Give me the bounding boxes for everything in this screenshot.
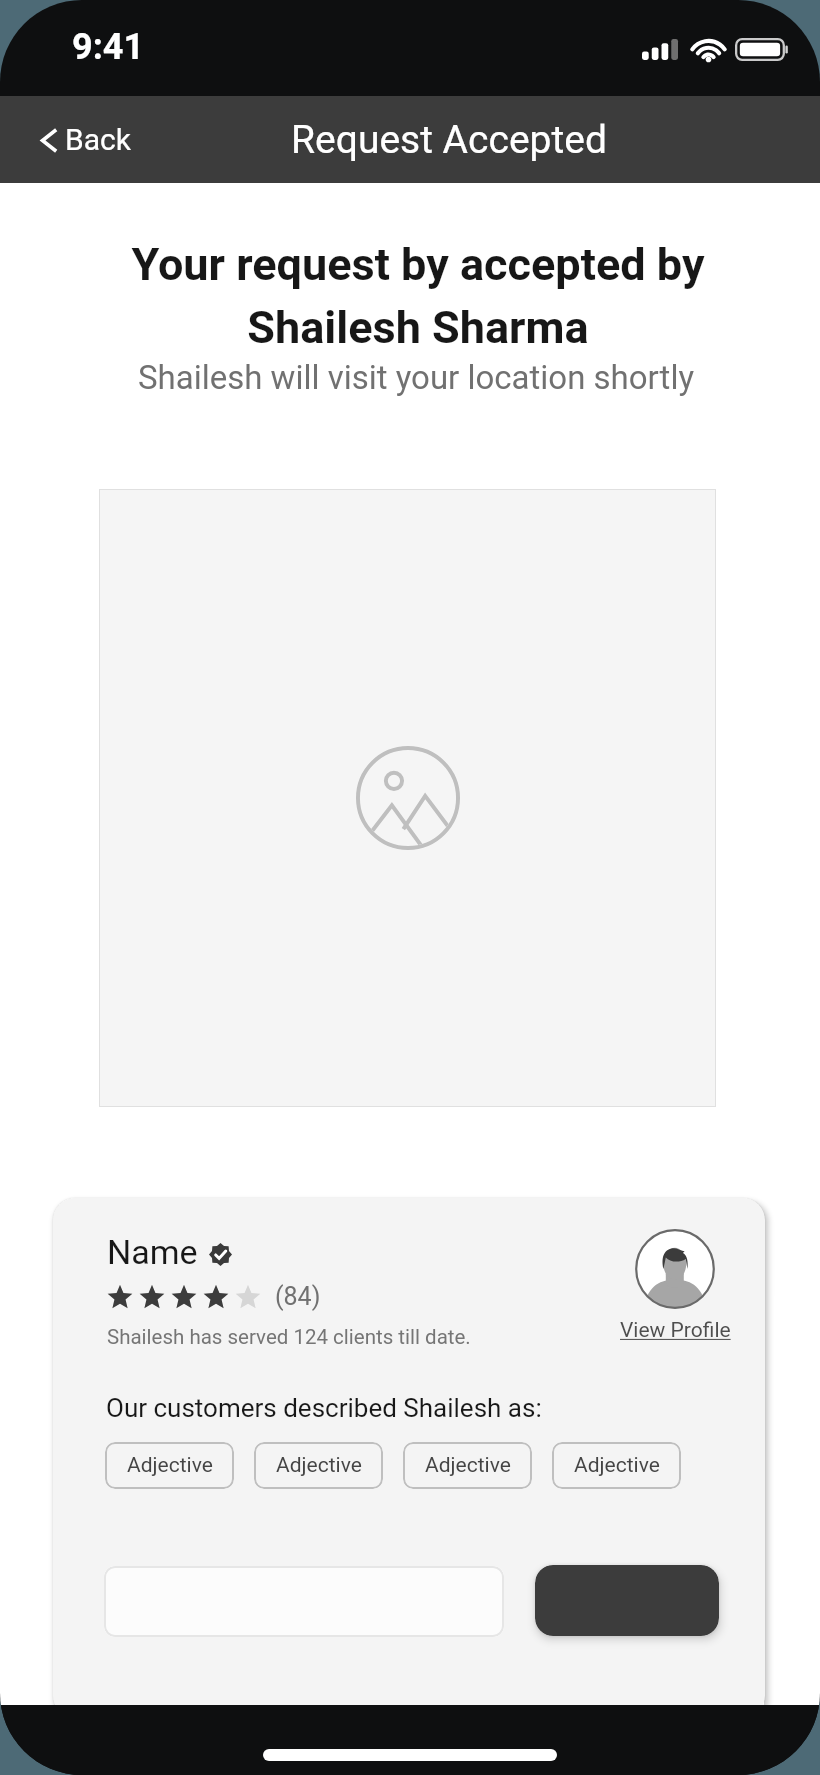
staticText: Your request by accepted by Shailesh Sha… [62,238,774,354]
button[interactable]: Adjective [403,1442,532,1489]
staticText: Our customers described Shailesh as: [106,1393,542,1423]
staticText: Shailesh will visit your location shortl… [6,358,820,397]
button[interactable]: View Profile [565,1229,765,1343]
staticText: View Profile [620,1318,731,1343]
staticText: (84) [275,1282,321,1311]
button[interactable]: Send [535,1565,719,1636]
staticText: Request Accepted [291,117,607,163]
button[interactable]: Adjective [552,1442,681,1489]
button[interactable]: Adjective [254,1442,383,1489]
staticText: Adjective [127,1453,213,1478]
button[interactable]: Adjective [105,1442,234,1489]
staticText: Adjective [276,1453,362,1478]
button[interactable]: Back [0,112,151,167]
staticText: Back [65,122,131,157]
staticText: Name [107,1232,198,1272]
staticText: Adjective [425,1453,511,1478]
staticText: Adjective [574,1453,660,1478]
button[interactable]: Message input [104,1566,504,1637]
staticText: 9:41 [72,26,145,68]
staticText: Shailesh has served 124 clients till dat… [107,1325,471,1349]
